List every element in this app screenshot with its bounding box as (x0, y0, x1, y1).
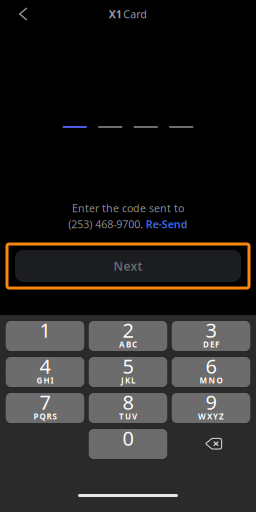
staticText: 2 (122, 317, 133, 343)
button[interactable]: 1 (6, 321, 84, 351)
staticText: DEF (203, 339, 219, 350)
staticText: 1 (39, 317, 50, 343)
button[interactable]: 4 (6, 357, 84, 387)
button[interactable]: 7 (6, 393, 84, 423)
staticText: Enter the code sent to (72, 201, 184, 215)
staticText: X1 (109, 7, 122, 21)
button[interactable]: 5 (89, 357, 167, 387)
staticText: 3 (205, 317, 216, 343)
staticText: (253) 468-9700. (68, 217, 143, 231)
staticText: Next (113, 258, 142, 274)
staticText: MNO (199, 375, 222, 386)
button[interactable]: Next (7, 244, 249, 288)
staticText: 9 (205, 389, 216, 415)
button[interactable]: 8 (89, 393, 167, 423)
staticText: 7 (39, 389, 50, 415)
staticText: JKL (121, 375, 135, 386)
button[interactable]: 3 (172, 321, 250, 351)
staticText: WXYZ (198, 411, 224, 422)
staticText: Card (123, 7, 147, 21)
button[interactable]: 6 (172, 357, 250, 387)
staticText: TUV (119, 411, 137, 422)
staticText: ABC (119, 339, 137, 350)
staticText: 4 (39, 353, 50, 379)
button[interactable]: 2 (89, 321, 167, 351)
staticText: 8 (122, 389, 133, 415)
button[interactable]: 9 (172, 393, 250, 423)
staticText: 6 (205, 353, 216, 379)
button[interactable]: Re-Send (146, 217, 188, 231)
button[interactable]: Delete (172, 429, 250, 459)
staticText: GHI (36, 375, 53, 386)
staticText: 5 (122, 353, 133, 379)
staticText: 0 (122, 425, 133, 451)
staticText: Re-Send (146, 217, 188, 231)
button[interactable]: Back (0, 0, 46, 28)
button[interactable]: 0 (89, 429, 167, 459)
staticText: PQRS (33, 411, 56, 422)
